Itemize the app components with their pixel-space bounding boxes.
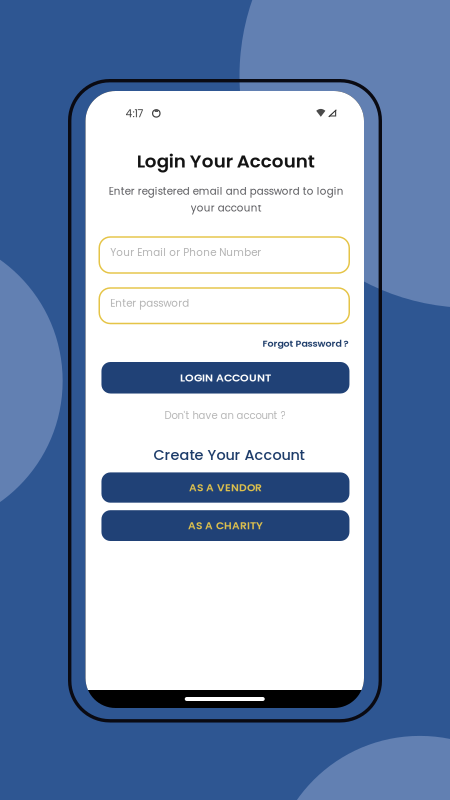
staticText: AS A VENDOR xyxy=(189,480,262,495)
staticText: LOGIN ACCOUNT xyxy=(180,370,271,385)
button[interactable]: Your Email or Phone Number xyxy=(99,237,349,273)
staticText: Login Your Account xyxy=(137,148,315,174)
button[interactable]: AS A VENDOR xyxy=(101,472,349,503)
button[interactable]: Enter password xyxy=(99,288,349,323)
button[interactable]: Don't have an account ? xyxy=(162,405,287,426)
staticText: Your Email or Phone Number xyxy=(110,245,261,260)
button[interactable]: AS A CHARITY xyxy=(101,510,349,541)
staticText: 4:17 xyxy=(125,106,143,121)
staticText: Forgot Password ? xyxy=(262,337,348,350)
button[interactable]: Forgot Password ? xyxy=(260,334,350,353)
staticText: AS A CHARITY xyxy=(188,518,263,533)
staticText: Enter registered email and password to l… xyxy=(108,184,343,215)
staticText: Enter password xyxy=(110,296,189,310)
staticText: Don't have an account ? xyxy=(164,408,285,423)
staticText: Create Your Account xyxy=(153,445,304,465)
button[interactable]: LOGIN ACCOUNT xyxy=(101,362,349,393)
